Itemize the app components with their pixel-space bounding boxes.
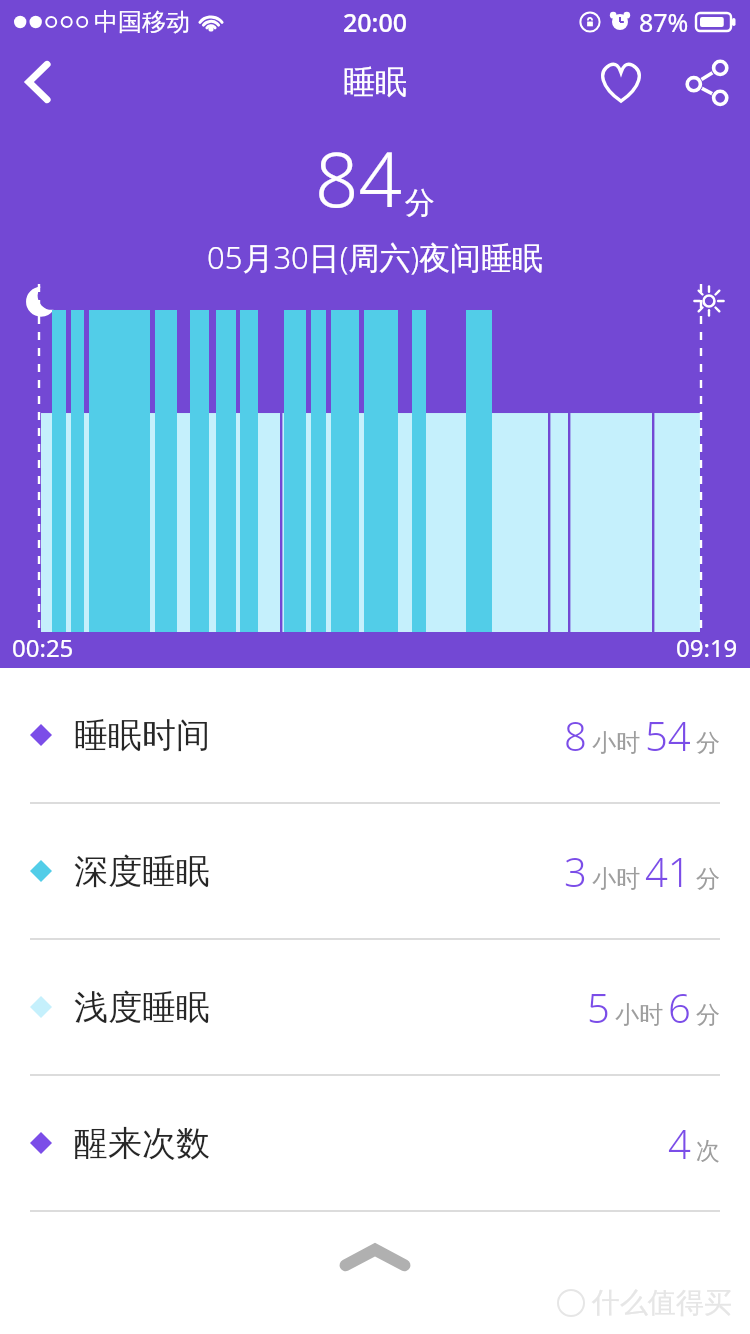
staticText: 中国移动 [94, 7, 190, 37]
staticText: 00:25 [12, 631, 74, 664]
staticText: 3 [564, 844, 587, 898]
staticText: 浅度睡眠 [74, 986, 210, 1029]
button[interactable]: Share [664, 44, 750, 120]
staticText: 09:19 [676, 631, 738, 664]
button[interactable]: Favorite [578, 44, 664, 120]
staticText: 84 [315, 126, 402, 230]
staticText: 41 [645, 844, 691, 898]
button[interactable]: 深度睡眠 [0, 804, 750, 938]
staticText: 深度睡眠 [74, 850, 210, 893]
staticText: 睡眠 [343, 62, 407, 102]
staticText: 小时 [615, 1000, 663, 1030]
staticText: 醒来次数 [74, 1122, 210, 1165]
staticText: 分 [696, 728, 720, 758]
staticText: 20:00 [343, 5, 408, 39]
staticText: 分 [696, 864, 720, 894]
staticText: 05月30日(周六)夜间睡眠 [207, 236, 543, 278]
staticText: 睡眠时间 [74, 714, 210, 757]
staticText: 次 [696, 1136, 720, 1166]
staticText: 4 [668, 1116, 691, 1170]
staticText: 8 [564, 708, 587, 762]
button[interactable]: Back [0, 44, 76, 120]
staticText: 5 [587, 980, 610, 1034]
staticText: 小时 [592, 728, 640, 758]
button[interactable]: 醒来次数 [0, 1076, 750, 1210]
staticText: 87% [639, 5, 689, 39]
staticText: 什么值得买 [592, 1285, 732, 1320]
button[interactable]: 睡眠时间 [0, 668, 750, 802]
staticText: 54 [645, 708, 691, 762]
button[interactable]: 浅度睡眠 [0, 940, 750, 1074]
staticText: 分 [696, 1000, 720, 1030]
button[interactable]: Expand [343, 1246, 407, 1270]
staticText: 6 [668, 980, 691, 1034]
staticText: 小时 [592, 864, 640, 894]
staticText: 分 [405, 184, 435, 222]
